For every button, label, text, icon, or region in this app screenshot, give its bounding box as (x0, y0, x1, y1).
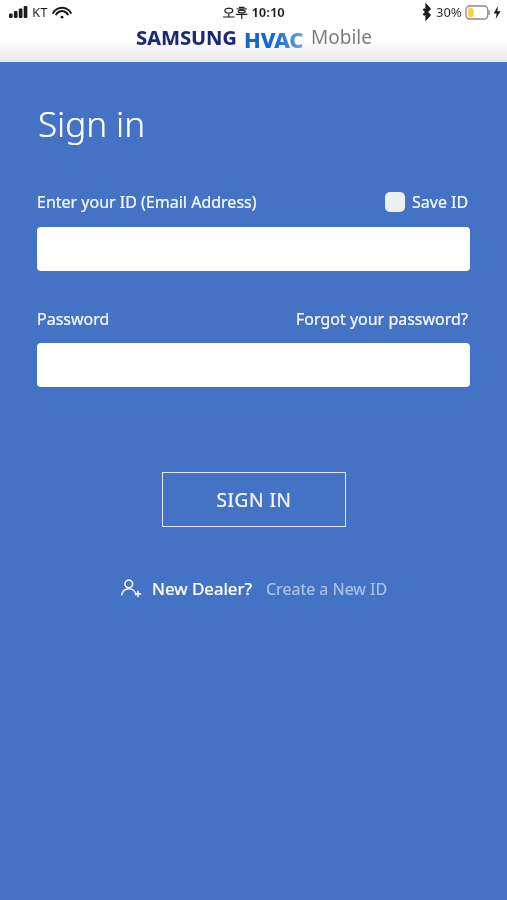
staticText: Create a New ID (266, 578, 388, 600)
staticText: 30% (436, 3, 462, 21)
button[interactable]: Save ID (384, 189, 470, 215)
button[interactable]: SIGN IN (162, 472, 346, 527)
staticText: Save ID (412, 191, 469, 213)
staticText: SAMSUNG (136, 24, 237, 50)
staticText: Sign in (38, 100, 146, 148)
staticText: 오후 10:10 (222, 3, 285, 21)
staticText: SIGN IN (216, 487, 292, 513)
staticText: KT (32, 3, 48, 21)
staticText: Forgot your password? (296, 308, 468, 330)
staticText: Mobile (311, 24, 372, 50)
other: Create a new dealer account (120, 578, 142, 600)
staticText: Enter your ID (Email Address) (37, 191, 257, 213)
staticText: New Dealer? (152, 577, 252, 600)
button[interactable] (37, 343, 470, 387)
staticText: Password (37, 308, 110, 330)
button[interactable]: Forgot your password? (294, 306, 470, 332)
button[interactable] (37, 227, 470, 271)
staticText: HVAC (244, 24, 304, 50)
button[interactable]: Create a new dealer account (116, 573, 392, 604)
